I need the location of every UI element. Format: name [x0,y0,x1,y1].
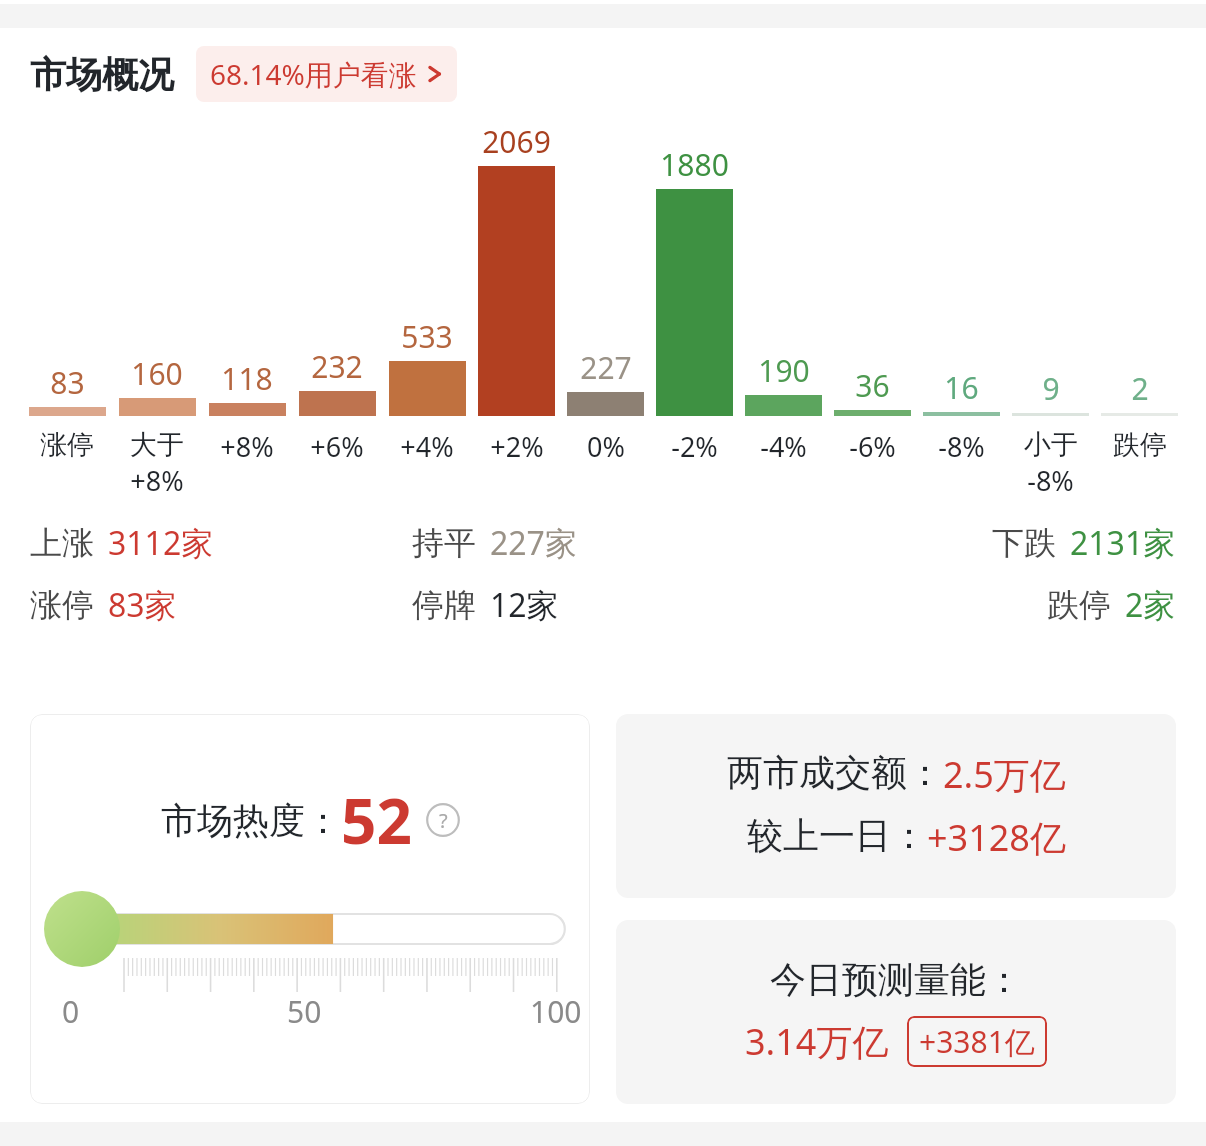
staticText: 50 [287,991,322,1032]
staticText: 下跌 [992,523,1056,563]
button[interactable]: 市场热度： [30,714,590,1104]
staticText: 上涨 [30,523,94,563]
staticText: 两市成交额： [727,750,943,795]
staticText: 2 [1131,368,1149,409]
staticText: 3112家 [108,521,214,565]
staticText: +8% [130,462,184,499]
staticText: 118 [221,358,273,399]
staticText: 2131家 [1070,521,1176,565]
staticText: 68.14%用户看涨 [210,55,417,93]
staticText: 227家 [490,521,577,565]
staticText: 2.5万亿 [943,750,1066,799]
button[interactable]: 今日预测量能： [616,920,1176,1104]
staticText: +8% [220,428,274,465]
staticText: 大于 [130,428,184,462]
staticText: 2069 [482,121,551,162]
staticText: 较上一日： [747,813,927,858]
staticText: 3.14万亿 [745,1017,889,1066]
staticText: 涨停 [30,585,94,625]
staticText: +3128亿 [927,813,1066,862]
staticText: +2% [490,428,544,465]
staticText: 跌停 [1113,428,1167,462]
staticText: 0% [587,428,625,465]
button[interactable]: 市场热度说明 [426,803,460,837]
staticText: 跌停 [1047,585,1111,625]
staticText: 83 [50,362,85,403]
staticText: 83家 [108,583,177,627]
staticText: 227 [580,347,632,388]
staticText: 涨停 [40,428,94,462]
button[interactable]: 68.14%用户看涨 [196,46,457,102]
staticText: 今日预测量能： [770,957,1022,1002]
staticText: 小于 [1024,428,1078,462]
staticText: 停牌 [412,585,476,625]
staticText: -8% [1027,462,1074,499]
staticText: 12家 [490,583,559,627]
staticText: ? [439,807,448,834]
staticText: 1880 [660,144,729,185]
staticText: -2% [671,428,718,465]
button[interactable]: 两市成交额： [616,714,1176,898]
staticText: +6% [310,428,364,465]
staticText: 2家 [1125,583,1176,627]
staticText: -6% [849,428,896,465]
staticText: 52 [341,778,412,862]
staticText: 9 [1042,368,1060,409]
staticText: -4% [760,428,807,465]
staticText: +4% [400,428,454,465]
staticText: 0 [62,991,80,1032]
staticText: 持平 [412,523,476,563]
staticText: +3381亿 [919,1021,1035,1062]
staticText: 16 [944,367,979,408]
staticText: 533 [401,316,453,357]
staticText: 190 [758,350,810,391]
staticText: 市场概况 [30,52,174,97]
staticText: 100 [530,991,582,1032]
staticText: -8% [938,428,985,465]
staticText: 36 [855,365,890,406]
staticText: 232 [311,346,363,387]
staticText: 市场热度： [161,798,341,843]
staticText: 160 [131,353,183,394]
